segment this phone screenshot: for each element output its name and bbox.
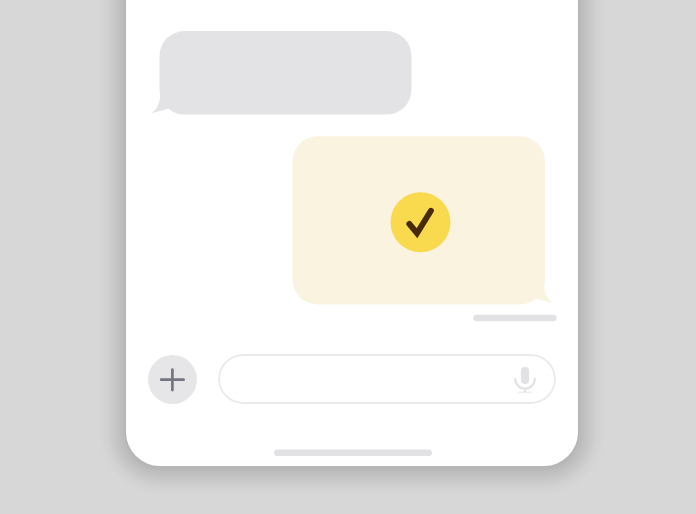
button[interactable] [218, 354, 556, 404]
button[interactable]: Voice input [508, 362, 542, 396]
button[interactable]: Add attachment [148, 355, 197, 404]
